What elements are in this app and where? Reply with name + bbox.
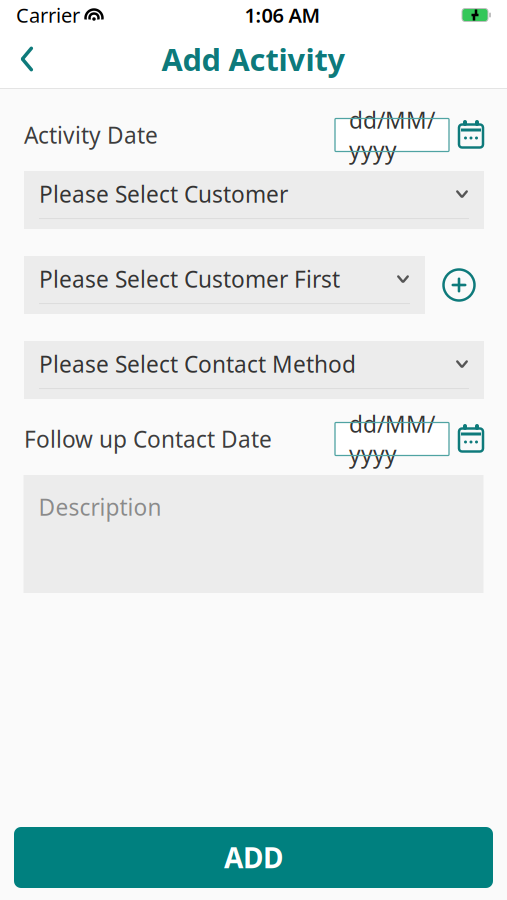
button[interactable]: dd/MM/yyyy xyxy=(335,422,449,455)
staticText: Add Activity xyxy=(161,39,345,79)
button[interactable]: Please Select Contact Method xyxy=(24,341,484,399)
staticText: Please Select Customer xyxy=(39,179,288,209)
button[interactable]: Please Select Customer xyxy=(24,171,484,229)
staticText: dd/MM/yyyy xyxy=(349,105,435,165)
staticText: Activity Date xyxy=(24,120,158,150)
button[interactable]: Add customer xyxy=(437,263,481,307)
staticText: dd/MM/yyyy xyxy=(349,409,435,469)
button[interactable]: dd/MM/yyyy xyxy=(335,118,449,151)
staticText: Carrier xyxy=(16,2,80,28)
button[interactable]: Description xyxy=(23,475,483,593)
staticText: Follow up Contact Date xyxy=(24,424,272,454)
staticText: Description xyxy=(38,492,161,522)
staticText: 1:06 AM xyxy=(244,2,320,28)
button[interactable]: ADD xyxy=(14,827,493,888)
staticText: Please Select Customer First xyxy=(39,264,340,294)
button[interactable]: Back xyxy=(0,32,54,86)
staticText: Please Select Contact Method xyxy=(39,349,356,379)
button[interactable]: Pick Follow up Contact Date xyxy=(449,419,493,459)
button[interactable]: Please Select Customer First xyxy=(24,256,425,314)
button[interactable]: Pick Activity Date xyxy=(449,115,493,155)
staticText: ADD xyxy=(224,839,283,876)
